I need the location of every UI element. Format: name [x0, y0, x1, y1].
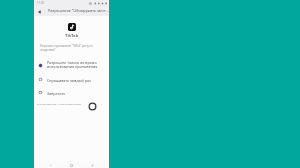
button[interactable]: Home	[67, 161, 75, 168]
button[interactable]: Запретить	[34, 86, 109, 98]
staticText: Спрашивать каждый раз	[47, 78, 91, 83]
button[interactable]: Спрашивать каждый раз	[34, 73, 109, 85]
staticText: Запретить	[47, 91, 66, 96]
staticText: 11:20	[37, 1, 45, 5]
staticText: Разрешение "Обнаружить мест...	[48, 8, 109, 13]
staticText: Разрешить только во время использования …	[47, 60, 98, 69]
button[interactable]: Back	[35, 7, 44, 16]
button[interactable]: Разрешить только во время использования …	[34, 59, 109, 71]
staticText: TikTok	[65, 33, 79, 39]
button[interactable]: Recents	[88, 161, 96, 168]
staticText: Все приложения с этим разрешением	[37, 102, 82, 105]
button[interactable]: Back	[46, 161, 54, 168]
staticText: Разрешить приложению "TikTok" доступ к г…	[40, 44, 93, 51]
